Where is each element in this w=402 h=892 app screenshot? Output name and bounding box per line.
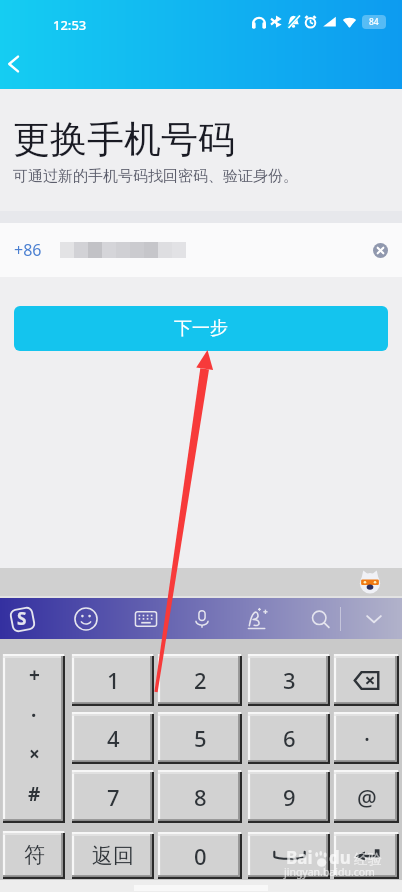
button[interactable]: 7 xyxy=(72,770,154,823)
staticText: 1 xyxy=(107,665,120,695)
staticText: 返回 xyxy=(92,843,134,869)
staticText: + xyxy=(29,662,40,688)
button[interactable]: 3 xyxy=(248,654,330,706)
button[interactable]: Sogou input xyxy=(7,604,37,634)
button[interactable]: 8 xyxy=(158,770,242,823)
button[interactable] xyxy=(334,654,399,706)
staticText: 6 xyxy=(283,723,296,753)
button[interactable]: 2 xyxy=(158,654,242,706)
staticText: 9 xyxy=(283,782,296,812)
button[interactable]: 符 xyxy=(3,831,65,879)
staticText: 2 xyxy=(194,665,207,695)
staticText: 8 xyxy=(194,782,207,812)
staticText: · xyxy=(364,723,370,753)
button[interactable]: 1 xyxy=(72,654,154,706)
button[interactable]: 4 xyxy=(72,712,154,764)
staticText: jingyan.baidu.com xyxy=(284,865,375,879)
button[interactable]: · xyxy=(334,712,399,764)
button[interactable]: 返回 xyxy=(72,832,154,879)
button[interactable]: Handwriting xyxy=(243,604,273,634)
button[interactable]: 6 xyxy=(248,712,330,764)
staticText: 4 xyxy=(107,723,120,753)
staticText: @ xyxy=(357,782,377,812)
staticText: 0 xyxy=(194,841,207,871)
staticText: Bai xyxy=(286,846,313,869)
staticText: 7 xyxy=(107,782,120,812)
button[interactable]: Clear xyxy=(366,236,394,264)
button[interactable]: 9 xyxy=(248,770,330,823)
staticText: · xyxy=(31,702,37,728)
button[interactable]: @ xyxy=(334,770,399,823)
button[interactable]: Emoji xyxy=(70,603,101,634)
button[interactable]: Search xyxy=(305,604,335,634)
staticText: # xyxy=(28,781,41,807)
staticText: 3 xyxy=(283,665,296,695)
button[interactable]: 0 xyxy=(158,832,242,879)
staticText: 84 xyxy=(369,16,379,28)
button[interactable]: Hide keyboard xyxy=(359,604,389,634)
staticText: 5 xyxy=(194,723,207,753)
staticText: 可通过新的手机号码找回密码、验证身份。 xyxy=(13,167,298,186)
staticText: S xyxy=(17,607,27,630)
staticText: × xyxy=(29,741,40,767)
staticText: 下一步 xyxy=(174,317,228,340)
button[interactable]: 5 xyxy=(158,712,242,764)
button[interactable]: Voice input xyxy=(187,604,217,634)
staticText: +86 xyxy=(14,239,42,261)
button[interactable]: Back xyxy=(0,44,34,84)
staticText: 更换手机号码 xyxy=(13,116,235,163)
button[interactable]: + xyxy=(3,654,65,823)
button[interactable] xyxy=(334,832,399,879)
button[interactable] xyxy=(248,832,330,879)
button[interactable]: Keyboard xyxy=(130,603,161,634)
staticText: 12:53 xyxy=(53,16,87,34)
staticText: du xyxy=(329,846,351,869)
button[interactable]: 下一步 xyxy=(14,306,388,351)
staticText: 符 xyxy=(24,842,45,868)
button[interactable]: +86 xyxy=(0,223,402,277)
staticText: 经验 xyxy=(354,851,382,869)
